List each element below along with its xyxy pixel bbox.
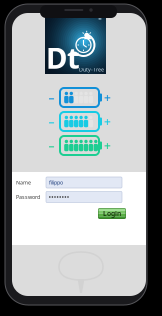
staticText: + (104, 113, 111, 129)
staticText: Dt (46, 38, 80, 77)
button[interactable] (46, 191, 122, 202)
staticText: – (48, 137, 54, 153)
staticText: Duty-Tree (79, 66, 104, 73)
staticText: – (48, 113, 54, 129)
button[interactable]: Decrease (48, 88, 55, 106)
button[interactable]: Decrease (48, 112, 55, 130)
staticText: Login (103, 209, 121, 218)
button[interactable]: Increase (104, 88, 111, 106)
staticText: filippo (49, 179, 63, 186)
button[interactable]: Increase (104, 136, 111, 154)
staticText: Password (16, 193, 40, 201)
button[interactable]: Increase (104, 112, 111, 130)
staticText: + (104, 137, 111, 153)
button[interactable]: Login (98, 208, 126, 219)
button[interactable]: filippo (46, 177, 122, 188)
staticText: – (48, 89, 54, 105)
button[interactable]: Decrease (48, 136, 55, 154)
staticText: Name (16, 179, 31, 186)
staticText: + (104, 89, 111, 105)
